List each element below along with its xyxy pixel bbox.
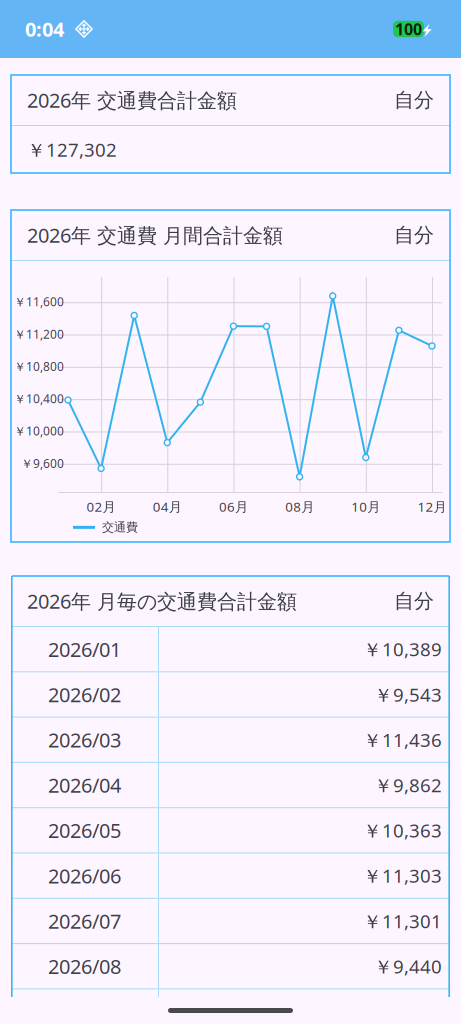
staticText: ￥11,436 <box>363 727 442 752</box>
staticText: 2026/05 <box>48 817 121 844</box>
staticText: 2026/08 <box>48 953 121 980</box>
staticText: 10月 <box>351 498 380 515</box>
staticText: 自分 <box>394 88 434 112</box>
staticText: 2026/04 <box>48 772 121 798</box>
staticText: 交通費 <box>102 520 138 535</box>
staticText: 2026年 月毎の交通費合計金額 <box>27 588 297 614</box>
staticText: ￥9,543 <box>374 682 442 707</box>
staticText: 02月 <box>87 498 116 515</box>
staticText: 04月 <box>153 498 182 515</box>
staticText: ￥9,600 <box>21 455 64 471</box>
staticText: ￥10,363 <box>363 818 442 843</box>
staticText: ￥9,440 <box>374 954 442 979</box>
staticText: ￥11,600 <box>14 294 64 310</box>
staticText: 2026/06 <box>48 862 121 889</box>
staticText: 100 <box>395 18 422 40</box>
staticText: 12月 <box>417 498 446 515</box>
staticText: 2026/03 <box>48 726 121 753</box>
staticText: 2026年 交通費合計金額 <box>27 87 237 113</box>
staticText: 06月 <box>219 498 248 515</box>
staticText: ￥11,200 <box>14 326 64 342</box>
staticText: 0:04 <box>25 16 64 42</box>
staticText: ￥10,389 <box>363 637 442 662</box>
staticText: ￥10,400 <box>14 391 64 407</box>
staticText: 自分 <box>394 223 434 247</box>
staticText: 自分 <box>394 589 434 613</box>
staticText: ￥127,302 <box>27 137 117 162</box>
staticText: 2026/07 <box>48 908 121 934</box>
staticText: 2026/01 <box>48 636 121 662</box>
staticText: 2026/02 <box>48 681 121 708</box>
staticText: 08月 <box>285 498 314 515</box>
staticText: ￥9,862 <box>374 773 442 797</box>
staticText: ￥11,301 <box>363 908 442 933</box>
staticText: ￥11,303 <box>363 863 442 888</box>
staticText: ￥10,800 <box>14 358 64 374</box>
staticText: 2026年 交通費 月間合計金額 <box>27 222 283 248</box>
staticText: ￥10,000 <box>14 423 64 439</box>
